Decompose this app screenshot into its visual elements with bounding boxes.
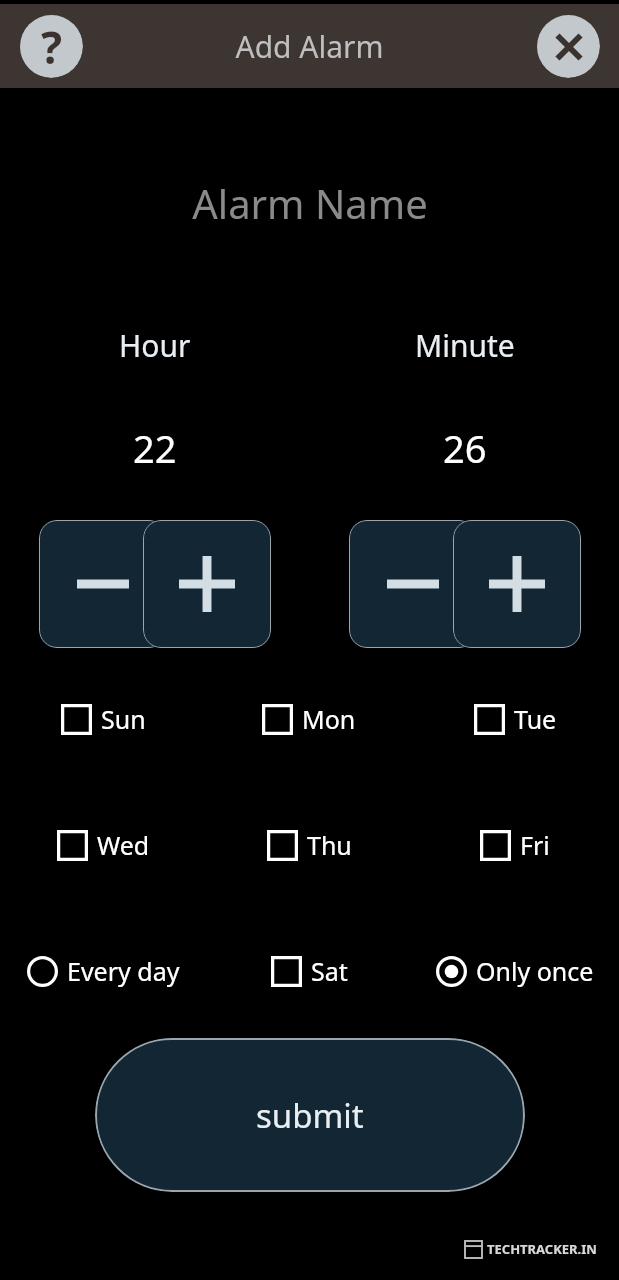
button[interactable]: Decrease Hour: [39, 520, 167, 648]
button[interactable]: Increase Hour: [143, 520, 271, 648]
button[interactable]: Every day: [23, 950, 184, 992]
staticText: Tue: [514, 702, 557, 736]
staticText: 22: [133, 422, 177, 474]
staticText: Thu: [307, 828, 352, 862]
button[interactable]: Sun: [57, 698, 150, 740]
button[interactable]: submit: [95, 1038, 525, 1192]
staticText: Alarm Name: [192, 176, 428, 230]
button[interactable]: Mon: [258, 698, 360, 740]
staticText: Fri: [520, 828, 550, 862]
button[interactable]: Close: [536, 14, 600, 78]
staticText: 26: [443, 422, 487, 474]
button[interactable]: Increase Minute: [453, 520, 581, 648]
button[interactable]: Decrease Minute: [349, 520, 477, 648]
staticText: submit: [256, 1093, 364, 1138]
button[interactable]: Alarm Name: [0, 168, 619, 238]
staticText: Only once: [476, 954, 594, 988]
button[interactable]: Wed: [53, 824, 154, 866]
staticText: Sat: [311, 954, 348, 988]
staticText: ?: [41, 17, 62, 77]
button[interactable]: Thu: [263, 824, 356, 866]
staticText: Sun: [101, 702, 146, 736]
staticText: Add Alarm: [235, 26, 384, 67]
staticText: Minute: [415, 325, 515, 366]
button[interactable]: Fri: [476, 824, 554, 866]
staticText: Hour: [119, 325, 191, 366]
button[interactable]: Sat: [267, 950, 352, 992]
staticText: Mon: [302, 702, 356, 736]
button[interactable]: Only once: [432, 950, 598, 992]
button[interactable]: Tue: [470, 698, 561, 740]
button[interactable]: Help: [19, 14, 83, 78]
staticText: Wed: [97, 828, 150, 862]
staticText: TECHTRACKER.IN: [487, 1240, 597, 1258]
staticText: Every day: [67, 954, 180, 988]
